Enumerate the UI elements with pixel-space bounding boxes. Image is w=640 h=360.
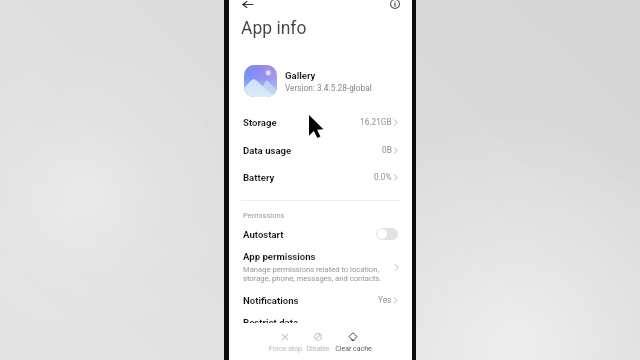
- staticText: App permissions: [243, 251, 316, 262]
- button[interactable]: Data usage: [229, 139, 412, 161]
- button[interactable]: Notifications: [229, 289, 412, 311]
- staticText: Clear cache: [335, 345, 372, 353]
- button[interactable]: Battery: [229, 166, 412, 188]
- staticText: 16.21GB: [360, 117, 392, 127]
- staticText: 0B: [382, 145, 392, 155]
- staticText: Permissions: [243, 211, 285, 220]
- staticText: Autostart: [243, 229, 376, 240]
- staticText: Restrict data: [243, 317, 398, 328]
- button[interactable]: Storage: [229, 111, 412, 133]
- button[interactable]: Clear cache: [331, 323, 375, 360]
- staticText: Version: 3.4.5.28-global: [285, 83, 372, 93]
- staticText: App info: [241, 18, 307, 39]
- staticText: Yes: [378, 295, 392, 305]
- button[interactable]: Autostart: [229, 223, 412, 245]
- staticText: Storage: [243, 117, 360, 128]
- button[interactable]: Restrict data: [229, 311, 412, 333]
- button[interactable]: App details: [382, 0, 408, 17]
- staticText: Gallery: [285, 70, 316, 81]
- staticText: Battery: [243, 172, 374, 183]
- button[interactable]: Disable: [296, 323, 340, 360]
- staticText: Disable: [306, 345, 330, 353]
- button[interactable]: App permissions: [229, 249, 412, 285]
- button[interactable]: Gallery: [229, 61, 412, 101]
- staticText: Force stop: [269, 345, 302, 353]
- button[interactable]: Force stop: [263, 323, 307, 360]
- staticText: Manage permissions related to location, …: [243, 265, 382, 283]
- button[interactable]: Back: [234, 0, 260, 17]
- staticText: Data usage: [243, 145, 382, 156]
- staticText: 0.0%: [374, 172, 392, 182]
- staticText: Notifications: [243, 295, 378, 306]
